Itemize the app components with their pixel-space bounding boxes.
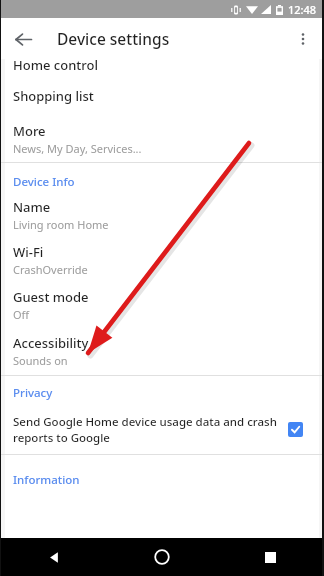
staticText: 12:48 <box>288 2 317 17</box>
button[interactable]: Back <box>9 25 37 53</box>
button[interactable]: Home <box>108 538 216 576</box>
staticText: Living room Home <box>13 217 109 232</box>
staticText: Off <box>13 307 30 322</box>
staticText: Home control <box>13 56 98 74</box>
staticText: Device settings <box>57 28 170 49</box>
staticText: Sounds on <box>13 353 68 368</box>
staticText: Privacy <box>13 385 53 401</box>
button[interactable]: Recent apps <box>216 538 324 576</box>
button[interactable]: Shopping list <box>5 77 319 115</box>
staticText: Guest mode <box>13 288 89 306</box>
button[interactable]: More <box>5 115 319 162</box>
button[interactable]: Accessibility <box>5 327 319 375</box>
staticText: Accessibility <box>13 334 89 352</box>
staticText: Information <box>13 472 80 488</box>
staticText: Name <box>13 198 51 216</box>
button[interactable]: Send usage data <box>288 422 303 437</box>
button[interactable]: Home control <box>5 59 319 77</box>
button[interactable]: More options <box>289 25 317 53</box>
staticText: More <box>13 122 46 140</box>
staticText: Send Google Home device usage data and c… <box>13 414 280 445</box>
button[interactable]: Guest mode <box>5 282 319 327</box>
staticText: Device Info <box>13 174 75 190</box>
staticText: News, My Day, Services... <box>13 141 142 156</box>
staticText: Wi-Fi <box>13 243 44 261</box>
button[interactable]: Name <box>5 193 319 237</box>
button[interactable]: Back <box>0 538 108 576</box>
staticText: CrashOverride <box>13 262 88 277</box>
button[interactable]: Wi-Fi <box>5 237 319 282</box>
staticText: Shopping list <box>13 87 94 105</box>
button[interactable]: Send Google Home device usage data and c… <box>5 404 319 454</box>
